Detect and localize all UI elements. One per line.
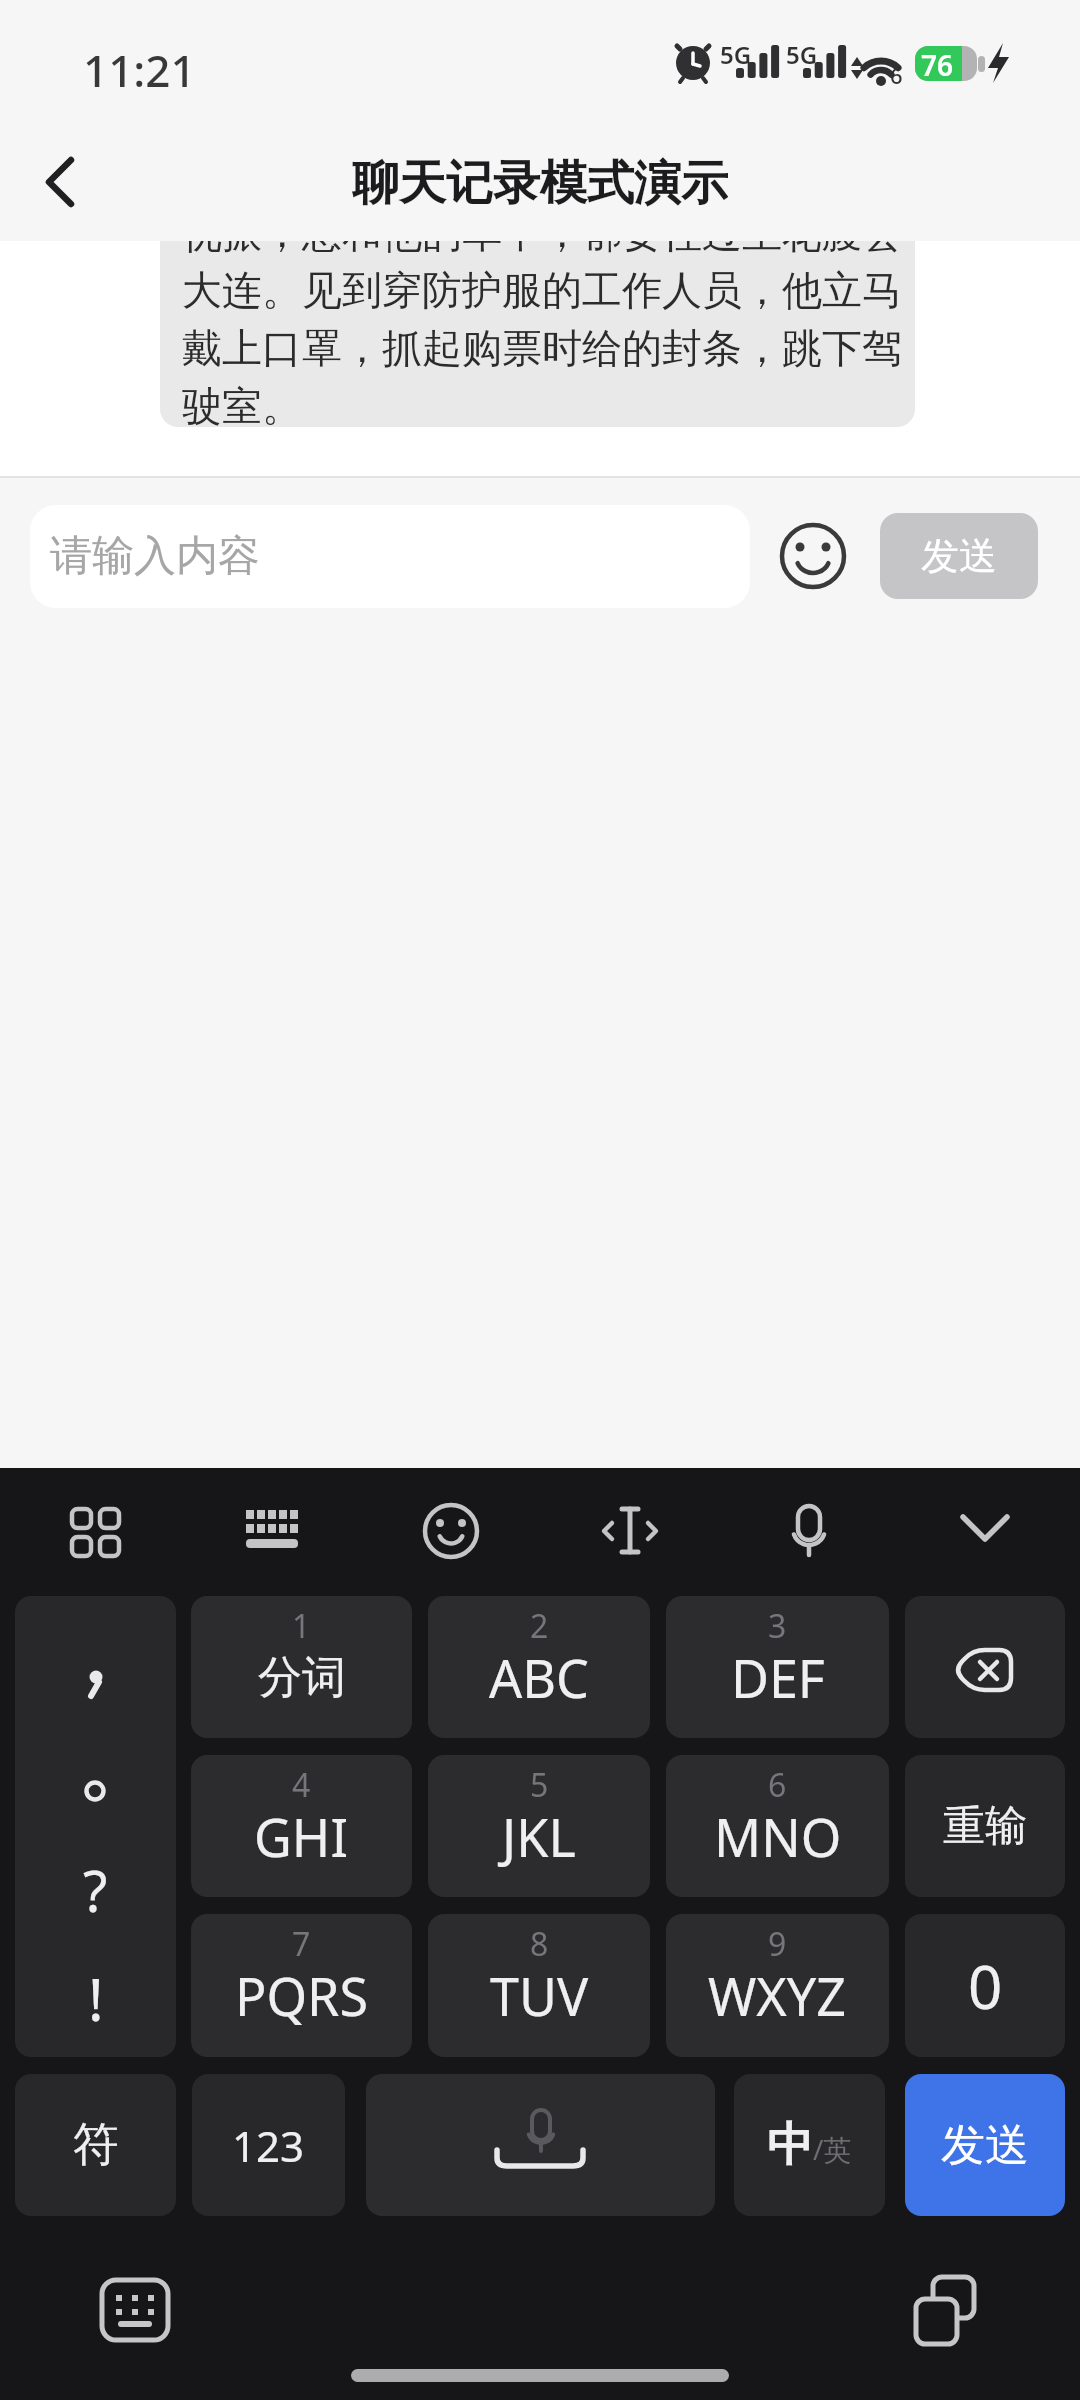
staticText: WXYZ (708, 1960, 847, 2031)
staticText: 优振，怎和他的车中，郁要往过至花腹会 大连。见到穿防护服的工作人员，他立马 戴上… (182, 241, 902, 427)
staticText: 123 (232, 2117, 305, 2174)
staticText: 5 (530, 1763, 549, 1807)
staticText: DEF (731, 1642, 825, 1713)
staticText: 9 (768, 1922, 787, 1966)
staticText: 符 (73, 2116, 119, 2174)
staticText: 5G (720, 38, 752, 68)
staticText: ? (83, 1852, 108, 1928)
staticText: TUV (490, 1960, 589, 2031)
staticText: 6 (768, 1763, 787, 1807)
staticText: 3 (768, 1604, 787, 1648)
staticText: 7 (292, 1922, 311, 1966)
staticText: 重输 (943, 1800, 1027, 1853)
staticText: 聊天记录模式演示 (352, 154, 728, 212)
staticText: MNO (714, 1801, 842, 1872)
staticText: 76 (921, 46, 954, 81)
staticText: GHI (254, 1801, 349, 1872)
staticText: JKL (502, 1801, 576, 1872)
staticText: 中 (767, 2116, 813, 2174)
staticText: 4 (292, 1763, 311, 1807)
staticText: PQRS (235, 1960, 368, 2031)
staticText: 11:21 (83, 40, 196, 88)
staticText: 发送 (921, 532, 997, 580)
staticText: 分词 (258, 1650, 346, 1705)
staticText: ! (88, 1959, 104, 2038)
staticText: 发送 (941, 2118, 1029, 2173)
staticText: 2 (530, 1604, 549, 1648)
staticText: /英 (813, 2130, 852, 2168)
staticText: 8 (530, 1922, 549, 1966)
staticText: 0 (968, 1945, 1003, 2027)
staticText: 6 (890, 60, 903, 86)
staticText: 5G (786, 38, 818, 68)
staticText: 请输入内容 (50, 530, 260, 583)
staticText: 1 (292, 1604, 311, 1648)
staticText: ABC (489, 1642, 589, 1713)
